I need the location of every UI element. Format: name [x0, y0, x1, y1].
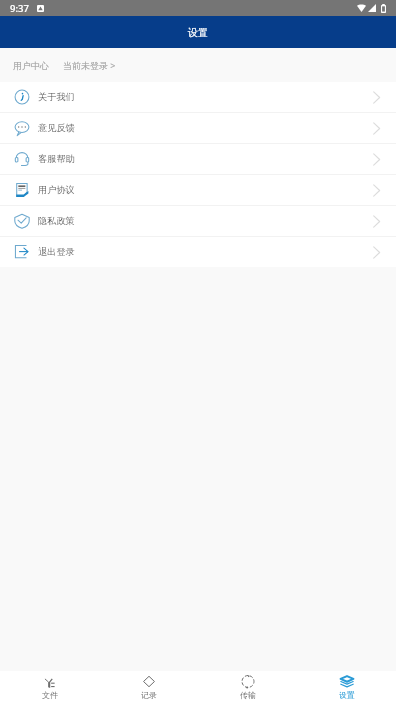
staticText: 设置 [339, 690, 355, 700]
staticText: 9:37 [10, 2, 29, 15]
staticText: 用户协议 [38, 184, 75, 196]
button[interactable]: 关于我们 [0, 82, 396, 112]
staticText: 客服帮助 [38, 153, 75, 165]
button[interactable]: 隐私政策 [0, 206, 396, 236]
button[interactable]: 设置 [297, 671, 396, 704]
staticText: 记录 [141, 690, 157, 700]
button[interactable]: 客服帮助 [0, 144, 396, 174]
staticText: 关于我们 [38, 91, 75, 103]
staticText: 传输 [240, 690, 256, 700]
button[interactable]: 退出登录 [0, 237, 396, 267]
staticText: 用户中心 [13, 60, 49, 71]
button[interactable]: 传输 [198, 671, 297, 704]
staticText: 退出登录 [38, 246, 75, 258]
button[interactable]: 用户协议 [0, 175, 396, 205]
button[interactable]: 文件 [0, 671, 99, 704]
staticText: 文件 [42, 690, 58, 700]
button[interactable]: 记录 [99, 671, 198, 704]
staticText: 设置 [188, 26, 208, 39]
staticText: 当前未登录 > [63, 59, 116, 71]
button[interactable]: 意见反馈 [0, 113, 396, 143]
button[interactable]: 用户中心 [0, 48, 396, 82]
staticText: 隐私政策 [38, 215, 75, 227]
staticText: 意见反馈 [38, 122, 75, 134]
